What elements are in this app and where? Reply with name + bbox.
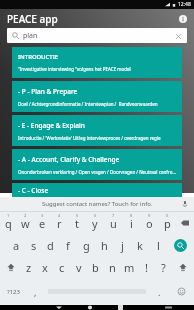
button[interactable]: Recent apps xyxy=(105,305,136,310)
button[interactable]: 5 xyxy=(68,212,86,234)
staticText: c xyxy=(59,260,65,275)
button[interactable]: Info xyxy=(177,13,189,25)
staticText: a xyxy=(13,238,20,253)
staticText: 4 xyxy=(58,213,61,218)
staticText: x xyxy=(42,260,48,275)
button[interactable]: ? xyxy=(155,256,172,278)
staticText: y xyxy=(92,216,98,231)
staticText: v xyxy=(76,260,82,275)
staticText: g xyxy=(83,238,90,253)
staticText: Suggest contact names? Touch for info. xyxy=(42,200,153,208)
staticText: 1 xyxy=(7,213,10,218)
button[interactable]: Search xyxy=(167,234,194,256)
staticText: w xyxy=(21,216,30,231)
button[interactable]: n xyxy=(104,256,121,278)
staticText: 12:48 xyxy=(178,1,191,8)
button[interactable]: b xyxy=(87,256,104,278)
button[interactable]: plan xyxy=(7,28,187,43)
staticText: - A - Account, Clarify & Challenge xyxy=(18,155,120,164)
button[interactable]: 6 xyxy=(86,212,104,234)
staticText: r xyxy=(57,216,62,231)
button[interactable]: d xyxy=(42,234,59,256)
staticText: , xyxy=(34,286,37,298)
staticText: 6 xyxy=(94,213,97,218)
staticText: d xyxy=(47,238,54,253)
staticText: k xyxy=(137,238,143,253)
button[interactable]: Space xyxy=(44,278,150,305)
button[interactable]: l xyxy=(149,234,167,256)
button[interactable]: k xyxy=(131,234,149,256)
button[interactable]: - P - Plan & Prepare xyxy=(12,81,182,112)
staticText: q xyxy=(5,216,12,231)
button[interactable]: - C - Close xyxy=(12,183,182,197)
staticText: - C - Close xyxy=(18,186,49,195)
button[interactable]: Shift xyxy=(172,256,194,278)
button[interactable]: ?123 xyxy=(0,278,26,305)
staticText: - E - Engage & Explain xyxy=(18,121,85,130)
staticText: 7 xyxy=(112,213,115,218)
staticText: Doel / Achtergrondinformatie / Interview… xyxy=(18,101,158,107)
staticText: 9 xyxy=(148,213,151,218)
button[interactable]: 4 xyxy=(51,212,68,234)
staticText: ! xyxy=(145,260,148,275)
button[interactable]: 1 xyxy=(0,212,17,234)
button[interactable]: 0 xyxy=(158,212,176,234)
staticText: ? xyxy=(161,260,166,275)
button[interactable]: - A - Account, Clarify & Challenge xyxy=(12,149,182,180)
staticText: e xyxy=(39,216,46,231)
button[interactable]: c xyxy=(53,256,70,278)
button[interactable]: Shift xyxy=(0,256,21,278)
staticText: 8 xyxy=(130,213,133,218)
staticText: - P - Plan & Prepare xyxy=(18,87,78,96)
button[interactable]: Hide keyboard xyxy=(153,305,184,310)
button[interactable]: z xyxy=(21,256,37,278)
staticText: n xyxy=(109,260,116,275)
button[interactable]: Emoji xyxy=(168,278,194,305)
button[interactable]: Backspace xyxy=(176,212,194,234)
staticText: plan xyxy=(23,31,38,41)
button[interactable]: s xyxy=(25,234,42,256)
button[interactable]: Clear query xyxy=(173,31,183,41)
button[interactable]: 8 xyxy=(122,212,140,234)
button[interactable]: - E - Engage & Explain xyxy=(12,115,182,146)
button[interactable]: 9 xyxy=(140,212,158,234)
staticText: ?123 xyxy=(7,288,20,296)
button[interactable]: g xyxy=(77,234,95,256)
staticText: b xyxy=(92,260,99,275)
button[interactable]: Home xyxy=(74,305,105,310)
staticText: h xyxy=(101,238,108,253)
staticText: INTRODUCTIE xyxy=(18,53,59,61)
staticText: p xyxy=(164,216,171,231)
button[interactable]: h xyxy=(95,234,113,256)
staticText: t xyxy=(75,216,79,231)
button[interactable]: f xyxy=(59,234,77,256)
staticText: u xyxy=(110,216,117,231)
button[interactable]: v xyxy=(70,256,87,278)
button[interactable]: a xyxy=(8,234,25,256)
staticText: m xyxy=(124,260,135,275)
button[interactable]: ! xyxy=(138,256,155,278)
staticText: 2 xyxy=(24,213,27,218)
staticText: s xyxy=(31,238,37,253)
staticText: f xyxy=(66,238,70,253)
button[interactable]: Voice input xyxy=(180,199,190,209)
button[interactable]: , xyxy=(26,278,44,305)
button[interactable]: x xyxy=(37,256,53,278)
staticText: j xyxy=(121,238,124,253)
button[interactable]: 2 xyxy=(17,212,34,234)
button[interactable]: Back xyxy=(43,305,74,310)
button[interactable]: . xyxy=(150,278,168,305)
staticText: Introductie / 'Werkrelatie' Uitleg inter… xyxy=(18,135,161,141)
button[interactable]: j xyxy=(113,234,131,256)
button[interactable]: 3 xyxy=(34,212,51,234)
staticText: z xyxy=(26,260,32,275)
button[interactable]: INTRODUCTIE xyxy=(12,47,182,78)
staticText: 0 xyxy=(166,213,169,218)
staticText: PEACE app xyxy=(7,12,58,26)
button[interactable]: m xyxy=(121,256,138,278)
staticText: i xyxy=(130,216,133,231)
staticText: Ononderbroken verklaring / Open vragen /… xyxy=(18,169,176,175)
staticText: o xyxy=(146,216,153,231)
staticText: 5 xyxy=(76,213,79,218)
button[interactable]: 7 xyxy=(104,212,122,234)
